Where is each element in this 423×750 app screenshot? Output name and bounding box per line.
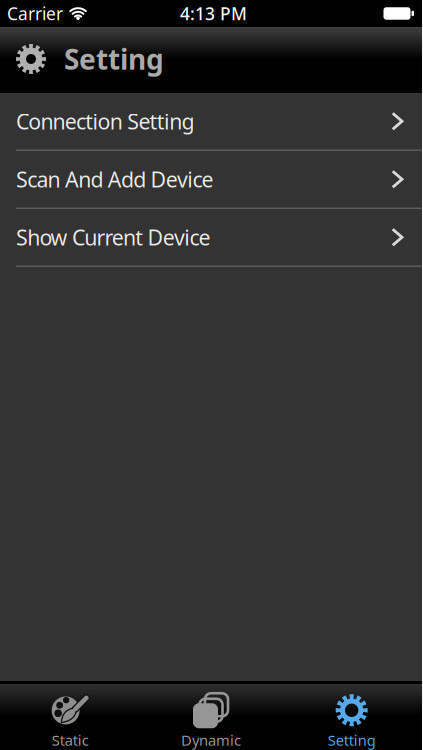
button[interactable]: Show Current Device (0, 209, 422, 267)
button[interactable]: Setting (281, 684, 422, 750)
button[interactable]: Connection Setting (0, 93, 422, 151)
staticText: Static (52, 730, 89, 750)
button[interactable]: Scan And Add Device (0, 151, 422, 209)
staticText: Scan And Add Device (16, 165, 214, 193)
staticText: Dynamic (181, 730, 241, 750)
staticText: Setting (64, 40, 164, 78)
staticText: 4:13 PM (180, 2, 247, 25)
button[interactable]: Static (0, 684, 141, 750)
button[interactable]: Dynamic (141, 684, 281, 750)
staticText: Setting (328, 730, 376, 750)
staticText: Carrier (7, 2, 63, 25)
staticText: Connection Setting (16, 107, 194, 135)
staticText: Show Current Device (16, 223, 211, 251)
